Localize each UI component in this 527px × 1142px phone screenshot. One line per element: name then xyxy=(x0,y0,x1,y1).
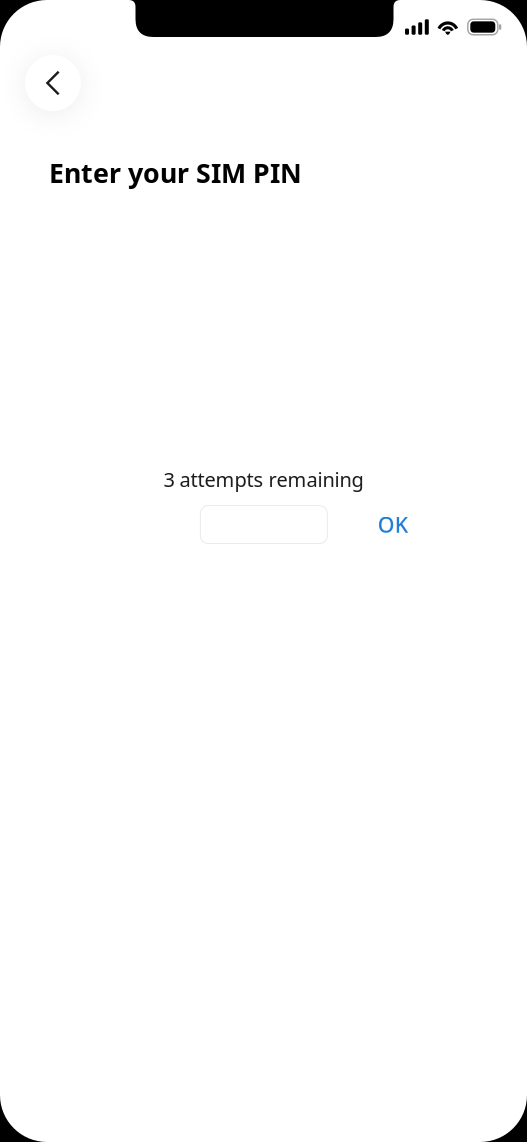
button[interactable]: OK xyxy=(366,506,420,544)
button[interactable]: Back xyxy=(25,55,81,111)
staticText: Enter your SIM PIN xyxy=(49,155,302,190)
staticText: OK xyxy=(378,510,408,539)
staticText: 3 attempts remaining xyxy=(163,466,363,493)
button[interactable]: SIM PIN xyxy=(200,506,327,544)
